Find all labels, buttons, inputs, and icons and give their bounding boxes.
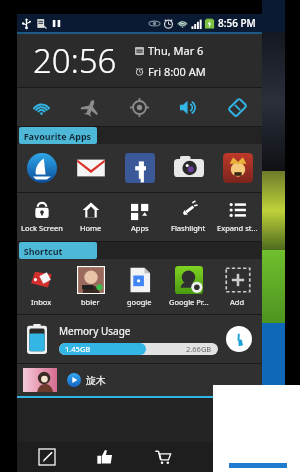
staticText: 2.66GB bbox=[186, 344, 212, 354]
button[interactable]: Compose bbox=[17, 442, 76, 472]
button[interactable]: Expand st… bbox=[213, 193, 262, 241]
button[interactable]: Clean memory bbox=[226, 326, 252, 352]
button[interactable]: 旋木 bbox=[17, 364, 262, 396]
button[interactable]: Apps bbox=[115, 193, 164, 241]
staticText: Expand st… bbox=[217, 223, 258, 233]
button[interactable]: Location bbox=[115, 88, 164, 126]
button[interactable]: Cart bbox=[134, 442, 192, 472]
staticText: Add bbox=[230, 297, 245, 307]
button[interactable]: bbier bbox=[66, 259, 115, 314]
staticText: Apps bbox=[131, 223, 149, 233]
staticText: 1.45GB bbox=[65, 344, 91, 354]
staticText: Memory Usage bbox=[59, 324, 131, 338]
staticText: 20:56 bbox=[33, 38, 117, 83]
staticText: google bbox=[127, 297, 152, 307]
button[interactable]: Flashlight bbox=[164, 193, 213, 241]
button[interactable]: Like bbox=[76, 442, 134, 472]
staticText: Favourite Apps bbox=[19, 130, 92, 142]
staticText: Lock Screen bbox=[21, 223, 63, 233]
staticText: 旋木 bbox=[86, 374, 106, 387]
button[interactable]: Inbox bbox=[17, 259, 66, 314]
button[interactable]: Google Pr… bbox=[164, 259, 213, 314]
button[interactable]: Browser bbox=[17, 144, 66, 192]
button[interactable]: Memory Usage bbox=[17, 315, 262, 363]
staticText: Inbox bbox=[31, 297, 52, 307]
button[interactable]: Add bbox=[213, 259, 262, 314]
button[interactable]: Clash of Clans bbox=[213, 144, 262, 192]
staticText: Fri 8:00 AM bbox=[148, 64, 206, 79]
staticText: Flashlight bbox=[171, 223, 206, 233]
staticText: Google Pr… bbox=[169, 297, 209, 307]
staticText: Home bbox=[80, 223, 102, 233]
staticText: Shortcut bbox=[19, 245, 63, 257]
button[interactable]: Gmail bbox=[66, 144, 115, 192]
button[interactable]: Lock Screen bbox=[17, 193, 66, 241]
button[interactable]: Wi-Fi bbox=[17, 88, 66, 126]
staticText: bbier bbox=[81, 297, 100, 307]
button[interactable]: Sound bbox=[164, 88, 213, 126]
staticText: 8:56 PM bbox=[218, 16, 256, 30]
button[interactable]: Camera bbox=[164, 144, 213, 192]
button[interactable]: Auto rotate bbox=[213, 88, 262, 126]
button[interactable]: Airplane mode bbox=[66, 88, 115, 126]
button[interactable]: Facebook bbox=[115, 144, 164, 192]
button[interactable]: Home bbox=[66, 193, 115, 241]
button[interactable]: google bbox=[115, 259, 164, 314]
staticText: Thu, Mar 6 bbox=[148, 43, 204, 58]
